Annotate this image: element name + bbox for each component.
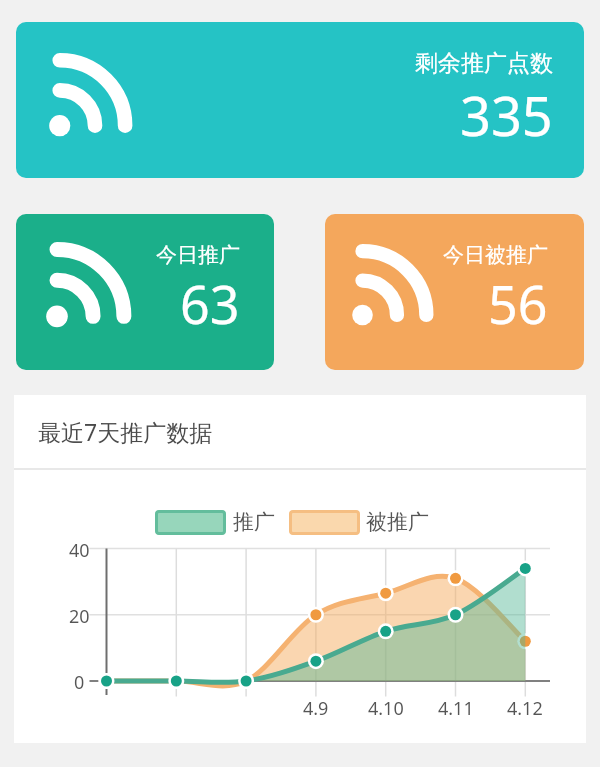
staticText: 0 xyxy=(74,670,85,691)
staticText: 63 xyxy=(180,268,240,339)
staticText: 今日被推广 xyxy=(443,242,548,268)
button[interactable]: 最近7天推广数据 xyxy=(14,395,586,468)
staticText: 4.11 xyxy=(438,696,474,720)
staticText: 4.9 xyxy=(303,696,329,720)
staticText: 56 xyxy=(488,268,548,339)
staticText: 最近7天推广数据 xyxy=(38,416,213,447)
staticText: 被推广 xyxy=(366,509,429,535)
staticText: 335 xyxy=(460,78,553,152)
button[interactable]: 剩余推广点数 xyxy=(16,22,584,178)
button[interactable]: 今日被推广 xyxy=(325,214,584,370)
staticText: 40 xyxy=(69,538,90,559)
button[interactable]: 今日推广 xyxy=(16,214,274,370)
staticText: 今日推广 xyxy=(156,242,240,268)
staticText: 4.10 xyxy=(368,696,404,720)
button[interactable] xyxy=(155,510,226,535)
button[interactable] xyxy=(289,510,360,535)
staticText: 4.12 xyxy=(507,696,543,720)
staticText: 剩余推广点数 xyxy=(415,49,553,78)
staticText: 20 xyxy=(69,604,90,625)
staticText: 推广 xyxy=(233,509,275,535)
